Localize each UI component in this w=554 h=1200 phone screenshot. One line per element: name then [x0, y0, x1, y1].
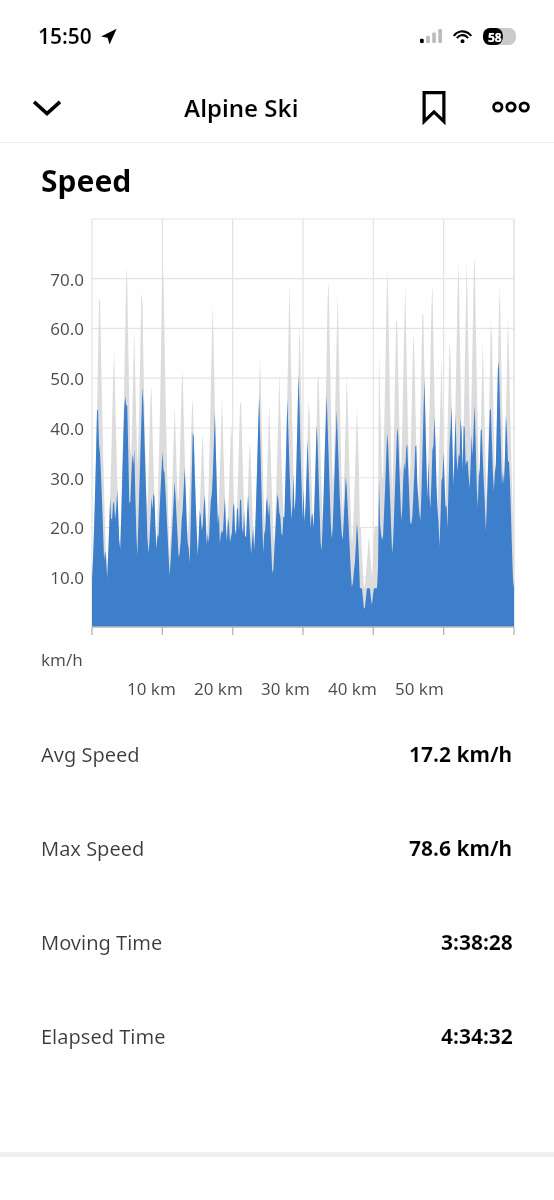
staticText: 70.0: [0, 268, 84, 291]
staticText: Moving Time: [41, 929, 163, 956]
staticText: 15:50: [38, 22, 92, 51]
staticText: 3:38:28: [441, 928, 513, 957]
button[interactable]: Avg Speed: [0, 707, 554, 801]
staticText: Max Speed: [41, 835, 145, 862]
staticText: 40 km: [328, 677, 377, 700]
staticText: 50 km: [395, 677, 444, 700]
staticText: 40.0: [0, 417, 84, 440]
staticText: 10 km: [127, 677, 176, 700]
staticText: 30.0: [0, 467, 84, 490]
staticText: 20.0: [0, 516, 84, 539]
staticText: 30 km: [261, 677, 310, 700]
staticText: Alpine Ski: [184, 91, 299, 124]
button[interactable]: Collapse: [0, 74, 94, 140]
button[interactable]: Moving Time: [0, 895, 554, 989]
staticText: km/h: [41, 648, 83, 671]
button[interactable]: More options: [468, 74, 554, 140]
button[interactable]: Elapsed Time: [0, 989, 554, 1083]
staticText: 60.0: [0, 317, 84, 340]
staticText: 20 km: [194, 677, 243, 700]
staticText: Avg Speed: [41, 741, 140, 768]
staticText: 50.0: [0, 367, 84, 390]
staticText: Speed: [41, 160, 132, 201]
staticText: 78.6 km/h: [409, 834, 513, 863]
staticText: 58: [488, 29, 502, 45]
staticText: 10.0: [0, 566, 84, 589]
staticText: 4:34:32: [441, 1022, 513, 1051]
button[interactable]: Max Speed: [0, 801, 554, 895]
staticText: Elapsed Time: [41, 1023, 166, 1050]
staticText: 17.2 km/h: [409, 740, 513, 769]
button[interactable]: Bookmark: [400, 74, 468, 140]
